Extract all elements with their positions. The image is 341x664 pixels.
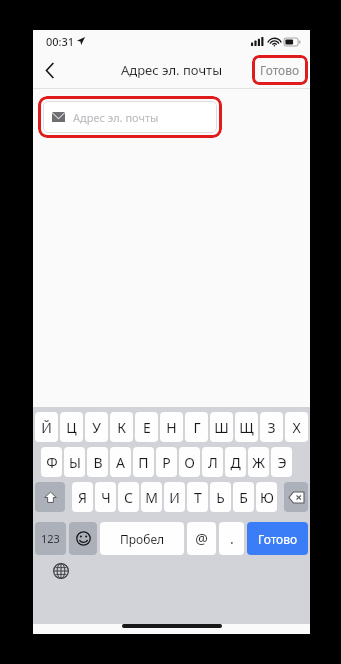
button[interactable]: З [260,412,283,442]
staticText: Г [193,418,201,437]
staticText: @ [195,529,208,548]
button[interactable]: Emoji [69,522,97,555]
button[interactable]: Ч [95,482,116,512]
staticText: Н [166,418,177,437]
button[interactable]: Ю [256,482,277,512]
staticText: Р [162,453,171,472]
button[interactable]: Ь [210,482,231,512]
button[interactable]: Готово [247,522,308,555]
button[interactable]: @ [187,522,216,555]
staticText: Ю [260,488,274,507]
staticText: Ч [101,488,111,507]
button[interactable]: М [141,482,162,512]
button[interactable]: Готово [252,55,308,85]
staticText: У [92,418,101,437]
staticText: Х [292,418,301,437]
staticText: В [93,453,103,472]
staticText: Е [143,418,151,437]
button[interactable]: В [87,447,108,477]
button[interactable]: П [133,447,154,477]
button[interactable]: К [110,412,133,442]
staticText: Д [230,453,241,472]
staticText: Адрес эл. почты [121,61,222,79]
button[interactable]: О [179,447,200,477]
button[interactable]: Ы [64,447,85,477]
button[interactable]: Ш [210,412,233,442]
staticText: Ь [216,488,225,507]
button[interactable]: Х [285,412,308,442]
button[interactable]: Е [135,412,158,442]
button[interactable]: У [85,412,108,442]
staticText: Ж [252,453,265,472]
button[interactable]: Р [156,447,177,477]
staticText: 00:31 [46,34,75,49]
staticText: Й [41,418,52,437]
staticText: Ш [214,418,229,437]
staticText: Э [277,453,287,472]
button[interactable]: Г [185,412,208,442]
button[interactable]: Д [225,447,246,477]
button[interactable]: Я [72,482,93,512]
staticText: С [124,488,133,507]
staticText: М [145,488,158,507]
staticText: 123 [41,531,60,546]
button[interactable]: Back [33,53,67,87]
button[interactable]: Shift [35,482,65,512]
staticText: З [267,418,276,437]
staticText: Б [239,488,248,507]
staticText: Ы [69,453,81,472]
staticText: Адрес эл. почты [73,110,159,125]
staticText: . [230,529,234,548]
button[interactable]: Пробел [100,522,184,555]
button[interactable]: Ц [60,412,83,442]
button[interactable]: С [118,482,139,512]
button[interactable]: Change keyboard language [49,559,73,583]
button[interactable]: Н [160,412,183,442]
button[interactable]: Backspace [284,482,308,512]
button[interactable]: . [219,522,244,555]
staticText: К [117,418,126,437]
staticText: И [169,488,180,507]
button[interactable]: Щ [235,412,258,442]
staticText: О [184,453,195,472]
button[interactable]: Ф [41,447,62,477]
staticText: Готово [258,531,298,547]
button[interactable]: И [164,482,185,512]
staticText: Я [78,488,87,507]
staticText: Щ [239,418,254,437]
button[interactable]: Т [187,482,208,512]
button[interactable]: Л [202,447,223,477]
staticText: Пробел [120,531,165,547]
staticText: Т [194,488,202,507]
staticText: А [116,453,125,472]
staticText: Готово [260,62,300,78]
staticText: Ф [46,453,58,472]
staticText: П [138,453,149,472]
staticText: Ц [66,418,77,437]
button[interactable]: Ж [248,447,269,477]
button[interactable]: Й [35,412,58,442]
button[interactable]: Адрес эл. почты [43,101,217,133]
button[interactable]: 123 [35,522,66,555]
staticText: Л [208,453,218,472]
button[interactable]: Б [233,482,254,512]
button[interactable]: Э [271,447,292,477]
button[interactable]: А [110,447,131,477]
